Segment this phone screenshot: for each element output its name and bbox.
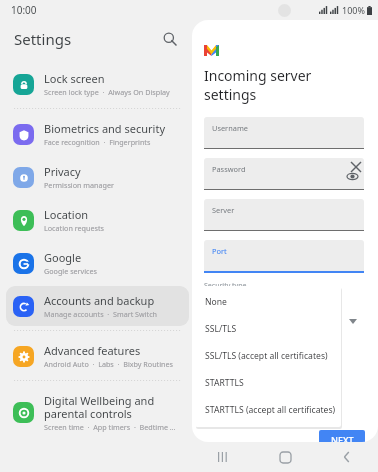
staticText: 10:00 <box>11 3 37 17</box>
button[interactable]: Password <box>204 158 364 190</box>
button[interactable]: Port <box>204 240 364 273</box>
button[interactable]: Username <box>204 117 364 149</box>
staticText: Privacy <box>44 164 81 179</box>
button[interactable]: Biometrics and security <box>6 114 189 154</box>
staticText: Digital Wellbeing and parental controls <box>44 393 182 421</box>
button[interactable]: Close <box>347 158 365 176</box>
button[interactable]: Lock screen <box>6 64 189 104</box>
staticText: Password <box>212 164 246 174</box>
staticText: Google <box>44 250 82 265</box>
staticText: 100% <box>342 4 365 16</box>
button[interactable]: SSL/TLS (accept all certificates) <box>195 342 341 369</box>
staticText: SSL/TLS (accept all certificates) <box>205 350 328 362</box>
staticText: Username <box>212 123 248 133</box>
staticText: Incoming server settings <box>204 66 364 104</box>
staticText: Settings <box>14 29 72 49</box>
staticText: Accounts and backup <box>44 293 155 308</box>
staticText: NEXT <box>331 434 354 442</box>
staticText: Android Auto · Labs · Bixby Routines <box>44 359 174 369</box>
staticText: Permission manager <box>44 180 115 190</box>
staticText: Location requests <box>44 223 104 233</box>
staticText: Manage accounts · Smart Switch <box>44 309 158 319</box>
button[interactable]: Digital Wellbeing and parental controls <box>6 386 189 439</box>
button[interactable]: STARTTLS (accept all certificates) <box>195 396 341 423</box>
button[interactable]: Accounts and backup <box>6 286 189 326</box>
staticText: Server <box>212 205 235 215</box>
staticText: Google services <box>44 266 98 276</box>
button[interactable]: Advanced features <box>6 336 189 376</box>
staticText: SSL/TLS <box>205 323 237 335</box>
button[interactable]: Home <box>254 442 316 472</box>
button[interactable]: Back <box>316 442 378 472</box>
staticText: Screen lock type · Always On Display <box>44 87 170 97</box>
button[interactable]: Location <box>6 200 189 240</box>
staticText: STARTTLS (accept all certificates) <box>205 404 336 416</box>
button[interactable]: Google <box>6 243 189 283</box>
staticText: Lock screen <box>44 71 105 86</box>
staticText: Security type <box>204 281 247 291</box>
staticText: None <box>205 296 227 308</box>
staticText: STARTTLS <box>205 377 244 389</box>
button[interactable]: Server <box>204 199 364 231</box>
staticText: Biometrics and security <box>44 121 165 136</box>
button[interactable]: Search <box>157 26 183 52</box>
button[interactable]: NEXT <box>319 430 365 442</box>
staticText: Port <box>212 246 227 256</box>
staticText: Advanced features <box>44 343 141 358</box>
button[interactable]: SSL/TLS <box>195 315 341 342</box>
staticText: Face recognition · Fingerprints <box>44 137 151 147</box>
staticText: Location <box>44 207 89 222</box>
button[interactable]: Recents <box>192 442 254 472</box>
button[interactable]: Privacy <box>6 157 189 197</box>
button[interactable]: STARTTLS <box>195 369 341 396</box>
staticText: Screen time · App timers · Bedtime mode <box>44 422 182 432</box>
button[interactable]: None <box>195 288 341 315</box>
